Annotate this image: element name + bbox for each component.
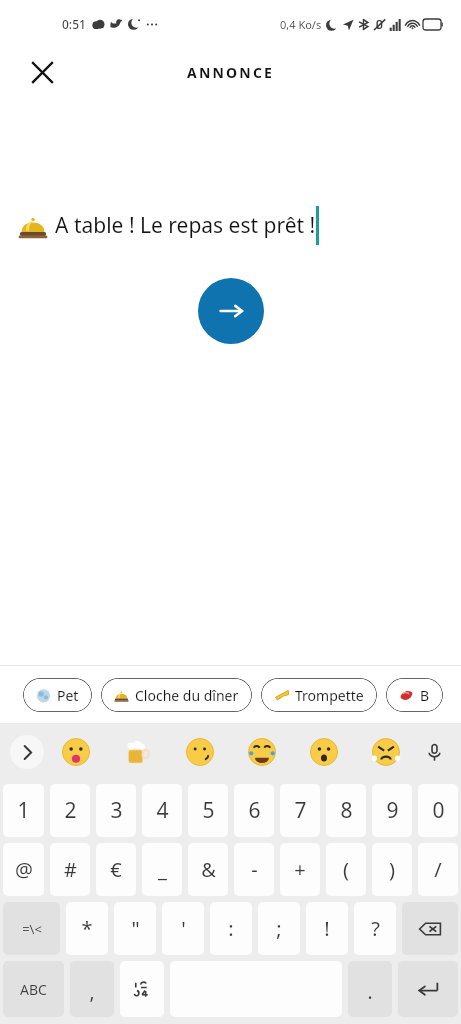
button[interactable]: 3	[96, 784, 136, 837]
button[interactable]: Envoyer	[198, 278, 264, 344]
staticText: 2	[64, 796, 77, 825]
button[interactable]: Pet	[23, 678, 92, 712]
button[interactable]: €	[96, 843, 136, 896]
button[interactable]: 9	[372, 784, 412, 837]
staticText: ABC	[20, 980, 47, 999]
staticText: "	[131, 915, 140, 942]
button[interactable]: _	[142, 843, 182, 896]
staticText: =\<	[22, 920, 42, 938]
button[interactable]: Emoji	[44, 737, 107, 767]
button[interactable]: &	[188, 843, 228, 896]
button[interactable]: ABC	[3, 961, 64, 1017]
button[interactable]: @	[3, 843, 44, 896]
button[interactable]: ,	[70, 961, 114, 1017]
button[interactable]: Trompette	[261, 678, 377, 712]
button[interactable]: !	[306, 902, 348, 955]
staticText: 0,4 Ko/s	[280, 17, 322, 32]
button[interactable]: =\<	[3, 902, 60, 955]
button[interactable]: /	[418, 843, 458, 896]
button[interactable]: Emoji	[169, 737, 231, 767]
button[interactable]: (	[326, 843, 366, 896]
staticText: Trompette	[295, 686, 364, 705]
button[interactable]: +	[280, 843, 320, 896]
button[interactable]: 8	[326, 784, 366, 837]
button[interactable]: 0	[418, 784, 458, 837]
staticText: ,	[89, 979, 95, 1005]
staticText: /	[434, 856, 442, 883]
button[interactable]: Entrée	[398, 961, 458, 1017]
button[interactable]: ;	[258, 902, 300, 955]
staticText: (	[343, 856, 349, 883]
staticText: Cloche du dîner	[135, 686, 239, 705]
button[interactable]: '	[162, 902, 204, 955]
staticText: ;	[276, 915, 282, 942]
staticText: 0	[432, 796, 445, 825]
button[interactable]: Emoji	[355, 737, 417, 767]
staticText: _	[158, 856, 167, 883]
button[interactable]: B	[386, 678, 443, 712]
button[interactable]: 2	[50, 784, 90, 837]
staticText: 8	[340, 796, 353, 825]
staticText: €	[110, 856, 122, 883]
button[interactable]: Emoji	[231, 737, 293, 767]
staticText: ?	[371, 915, 380, 942]
staticText: 7	[294, 796, 307, 825]
staticText: 3	[110, 796, 123, 825]
button[interactable]: ?	[354, 902, 396, 955]
staticText: 9	[386, 796, 399, 825]
button[interactable]: Supprimer	[402, 902, 458, 955]
button[interactable]: )	[372, 843, 412, 896]
staticText: A table ! Le repas est prêt !	[55, 211, 316, 240]
staticText: *	[81, 915, 93, 942]
button[interactable]: #	[50, 843, 90, 896]
button[interactable]: Micro	[417, 735, 451, 769]
staticText: &	[201, 856, 216, 883]
button[interactable]: Fermer	[22, 52, 62, 92]
button[interactable]: Chiffres	[120, 961, 164, 1017]
button[interactable]: :	[210, 902, 252, 955]
button[interactable]: Emoji	[107, 737, 169, 767]
staticText: 0:51	[62, 16, 86, 32]
staticText: ANNONCE	[187, 63, 275, 82]
button[interactable]: 5	[188, 784, 228, 837]
button[interactable]: 6	[234, 784, 274, 837]
staticText: )	[389, 856, 395, 883]
button[interactable]: .	[348, 961, 392, 1017]
staticText: B	[420, 686, 430, 705]
button[interactable]: 1	[3, 784, 44, 837]
staticText: +	[294, 856, 306, 883]
staticText: .	[367, 979, 373, 1005]
staticText: '	[181, 915, 186, 942]
staticText: -	[251, 856, 258, 883]
staticText: !	[324, 915, 330, 942]
button[interactable]: 4	[142, 784, 182, 837]
staticText: 6	[248, 796, 261, 825]
staticText: :	[228, 915, 234, 942]
button[interactable]: -	[234, 843, 274, 896]
staticText: 1	[17, 796, 30, 825]
button[interactable]: "	[114, 902, 156, 955]
button[interactable]: Emoji	[293, 737, 355, 767]
staticText: 4	[156, 796, 169, 825]
button[interactable]: Plus d'emojis	[10, 735, 44, 769]
button[interactable]: *	[66, 902, 108, 955]
staticText: Pet	[57, 686, 79, 705]
staticText: @	[15, 856, 33, 883]
staticText: 5	[202, 796, 215, 825]
button[interactable]: Cloche du dîner	[101, 678, 252, 712]
staticText: #	[64, 856, 77, 883]
button[interactable]: 7	[280, 784, 320, 837]
